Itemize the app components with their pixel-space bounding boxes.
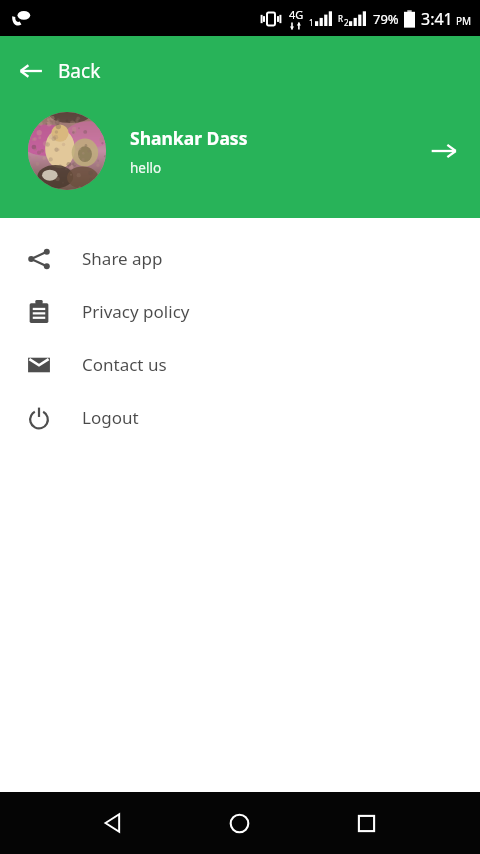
staticText: Share app: [82, 247, 163, 270]
staticText: Privacy policy: [82, 300, 190, 323]
other: Back: [18, 58, 44, 84]
other: Open profile: [430, 137, 458, 165]
staticText: R: [338, 13, 343, 24]
button[interactable]: Back: [68, 792, 157, 854]
staticText: 1: [309, 17, 314, 28]
staticText: Shankar Dass: [130, 126, 248, 150]
staticText: Back: [58, 58, 101, 84]
staticText: PM: [456, 14, 472, 28]
button[interactable]: Privacy policy: [0, 285, 480, 338]
staticText: hello: [130, 159, 162, 177]
button[interactable]: Share app: [0, 232, 480, 285]
staticText: 4G: [289, 7, 304, 22]
button[interactable]: Recent apps: [322, 792, 411, 854]
button[interactable]: Logout: [0, 391, 480, 444]
staticText: 3:41: [421, 8, 453, 30]
button[interactable]: Contact us: [0, 338, 480, 391]
button[interactable]: Back: [18, 54, 113, 88]
button[interactable]: Shankar Dass: [0, 106, 480, 196]
staticText: Contact us: [82, 353, 167, 376]
staticText: Logout: [82, 406, 139, 429]
staticText: 79%: [373, 10, 399, 28]
staticText: 2: [344, 17, 349, 28]
button[interactable]: Home: [195, 792, 284, 854]
